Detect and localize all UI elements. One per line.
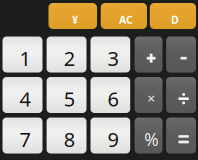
button[interactable]: 1 <box>2 36 42 72</box>
button[interactable]: Equals <box>166 117 196 153</box>
button[interactable]: Divide <box>166 77 196 113</box>
staticText: 7 <box>20 126 31 152</box>
button[interactable]: Delete <box>150 3 196 29</box>
button[interactable]: 7 <box>2 117 42 153</box>
staticText: % <box>144 128 158 151</box>
staticText: 8 <box>64 126 75 152</box>
button[interactable]: Percent <box>135 117 162 153</box>
staticText: 9 <box>107 126 118 152</box>
button[interactable]: 9 <box>90 117 130 153</box>
button[interactable]: 3 <box>90 36 130 72</box>
staticText: ¥ <box>72 12 78 27</box>
button[interactable]: Currency <box>48 3 97 29</box>
staticText: 5 <box>64 85 75 112</box>
staticText: ✕ <box>147 93 156 105</box>
button[interactable]: Multiply <box>135 77 162 113</box>
button[interactable]: 5 <box>47 77 86 113</box>
button[interactable]: 4 <box>2 77 42 113</box>
staticText: 2 <box>64 45 75 71</box>
button[interactable]: 8 <box>47 117 86 153</box>
button[interactable]: Subtract <box>166 36 196 72</box>
staticText: 3 <box>107 45 118 71</box>
staticText: 6 <box>107 85 118 112</box>
button[interactable]: 2 <box>47 36 86 72</box>
button[interactable]: 6 <box>90 77 130 113</box>
staticText: AC <box>119 12 133 27</box>
button[interactable]: All clear <box>101 3 147 29</box>
staticText: D <box>171 12 179 27</box>
staticText: 1 <box>20 45 31 71</box>
staticText: 4 <box>20 85 31 112</box>
button[interactable]: Add <box>135 36 162 72</box>
